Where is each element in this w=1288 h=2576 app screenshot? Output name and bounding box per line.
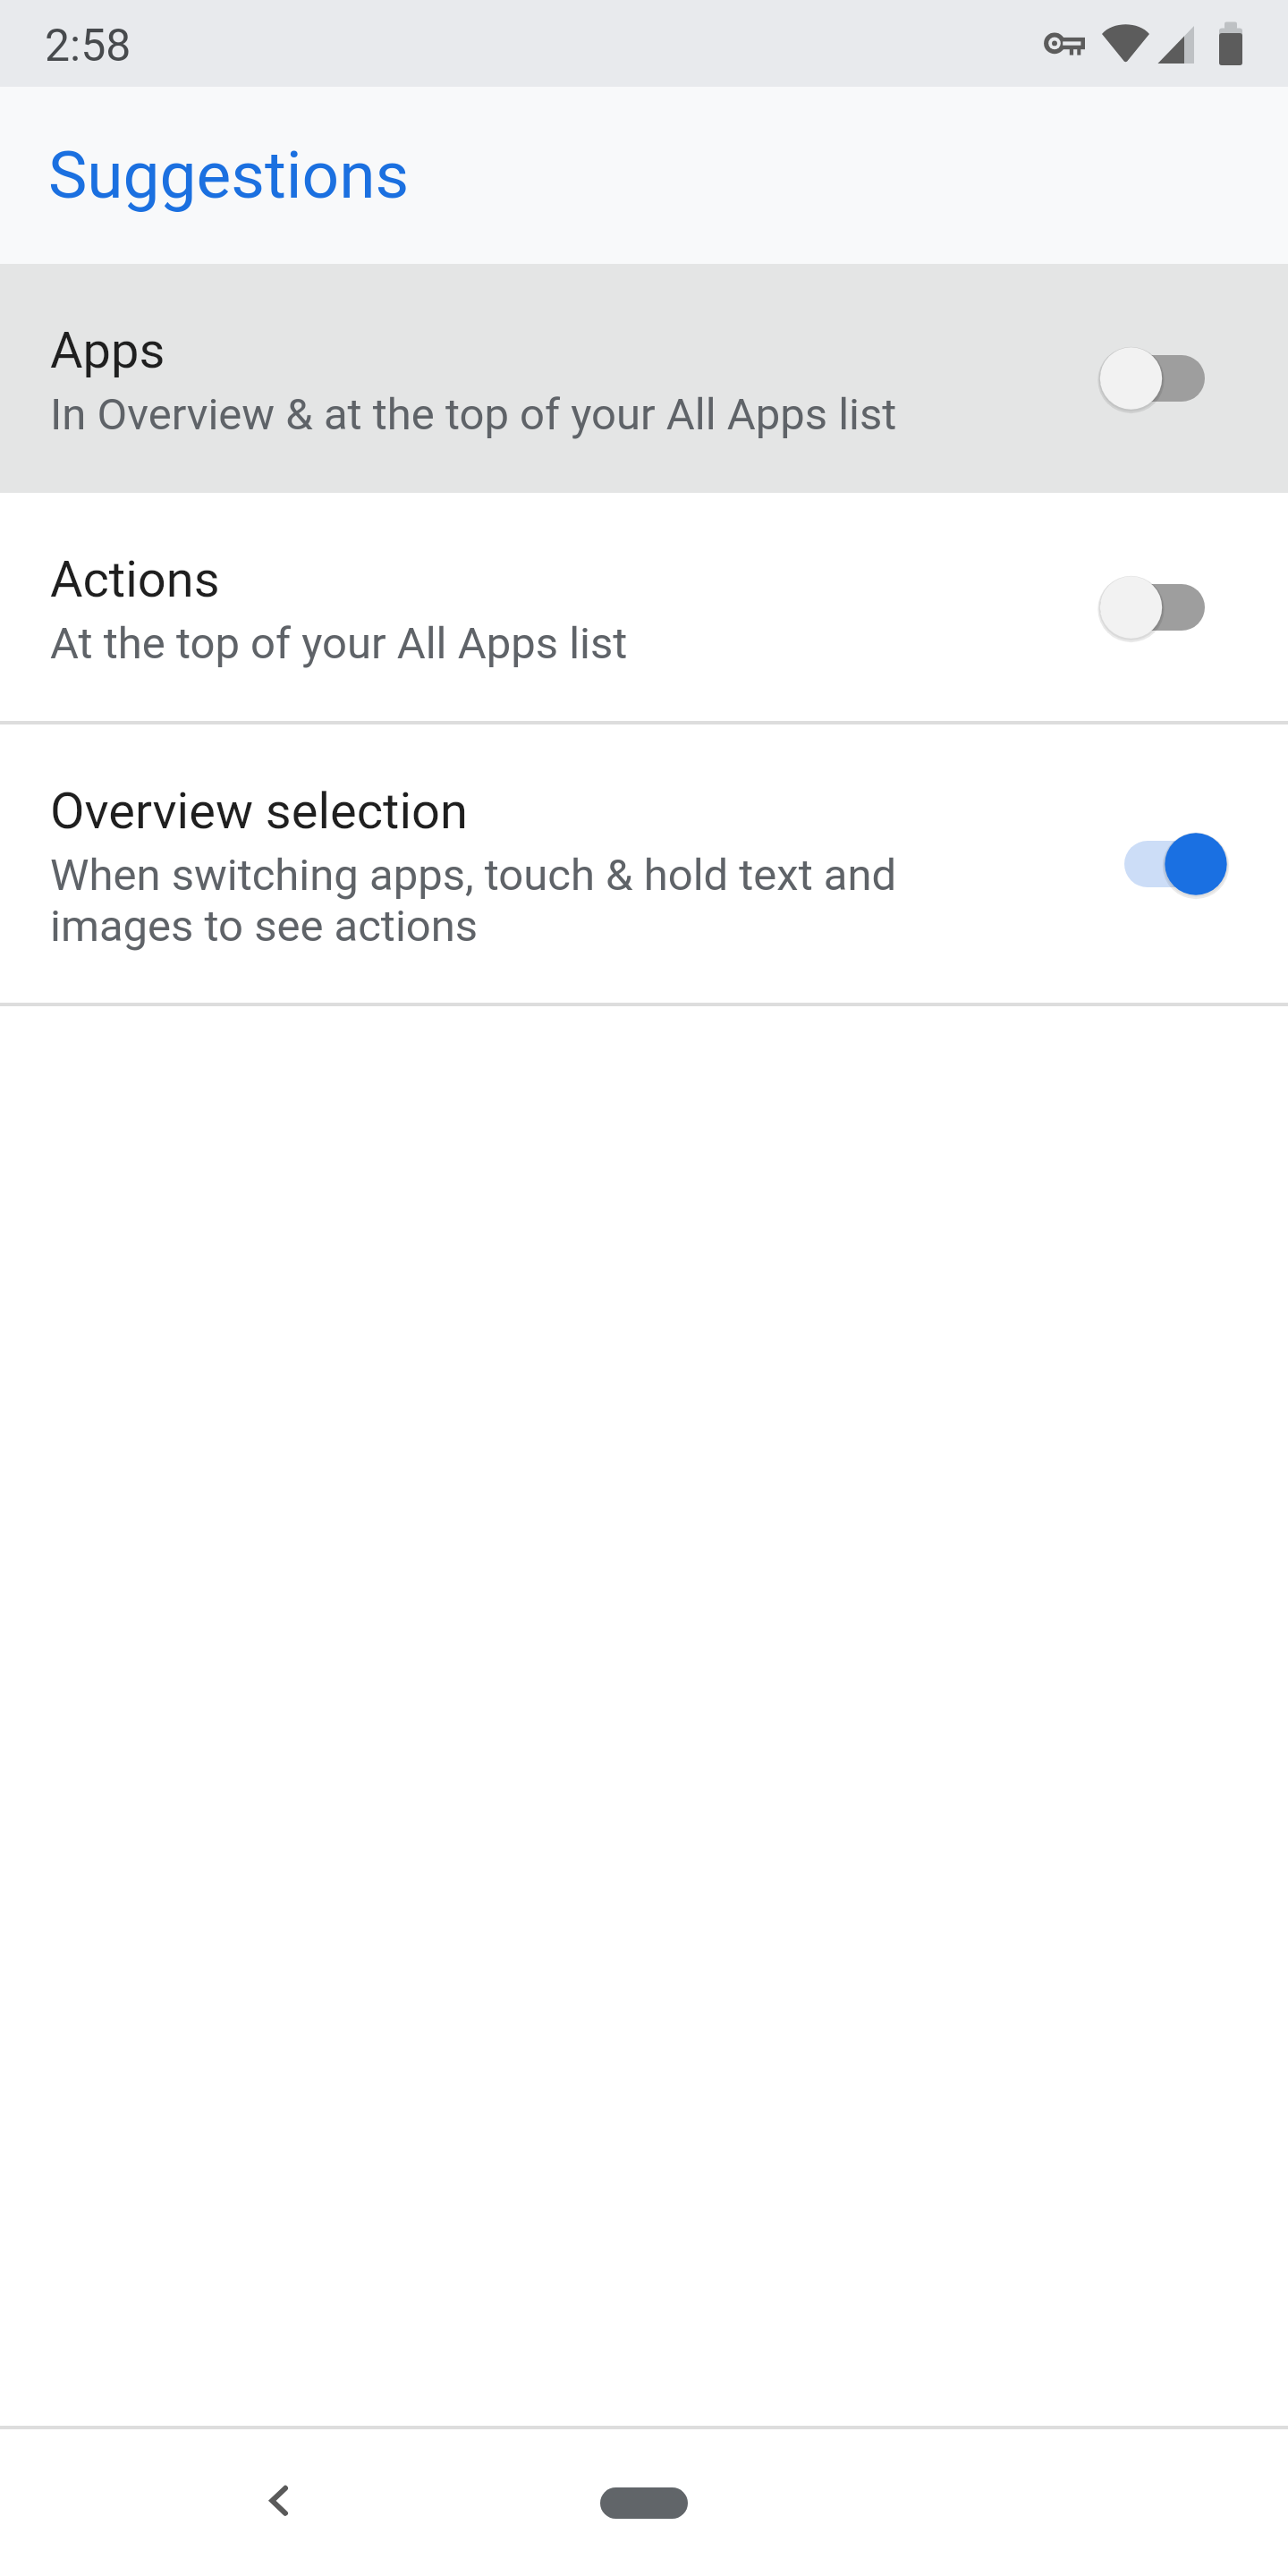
button[interactable]: Toggle off	[1079, 536, 1249, 679]
staticText: At the top of your All Apps list	[50, 618, 628, 669]
staticText: Apps	[50, 321, 165, 380]
staticText: When switching apps, touch & hold text a…	[50, 850, 984, 952]
button[interactable]: Toggle on	[1079, 792, 1249, 936]
staticText: Actions	[50, 550, 220, 609]
staticText: 2:58	[45, 20, 131, 72]
button[interactable]: Actions	[0, 493, 1288, 721]
button[interactable]: Back	[214, 2444, 343, 2560]
staticText: Overview selection	[50, 782, 468, 841]
button[interactable]: Overview selection	[0, 724, 1288, 1003]
button[interactable]: Apps	[0, 264, 1288, 493]
staticText: In Overview & at the top of your All App…	[50, 389, 897, 440]
button[interactable]: Toggle off	[1079, 307, 1249, 450]
staticText: Suggestions	[48, 137, 410, 213]
button[interactable]: Home	[600, 2487, 688, 2519]
